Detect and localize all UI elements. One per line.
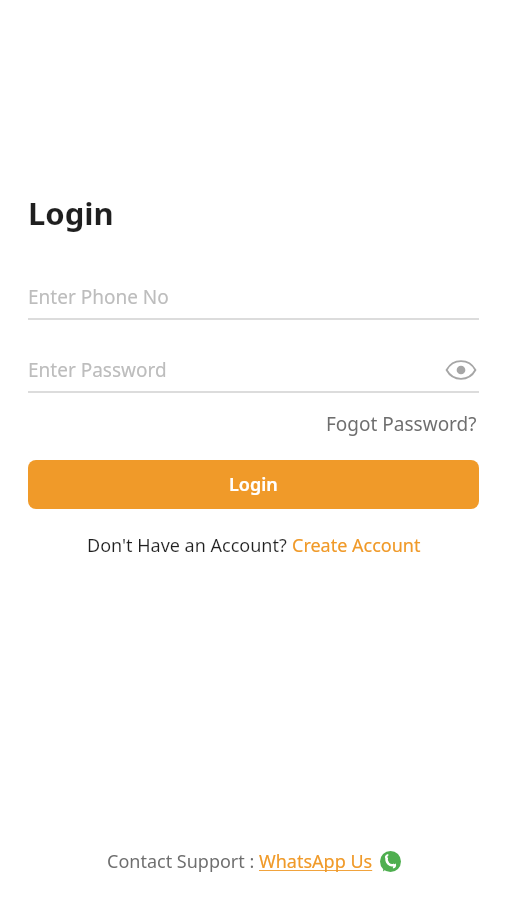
button[interactable]: Show password (443, 352, 479, 388)
staticText: Login (28, 192, 114, 234)
button[interactable]: Login (28, 460, 479, 509)
button[interactable]: Create Account (292, 533, 421, 558)
other: WhatsApp (380, 851, 401, 872)
staticText: Create Account (292, 533, 421, 558)
staticText: Login (229, 472, 278, 497)
button[interactable]: Enter Password (28, 349, 479, 391)
staticText: Don't Have an Account? (87, 533, 292, 558)
button[interactable]: WhatsApp Us (259, 849, 401, 874)
button[interactable]: Fogot Password? (324, 407, 479, 441)
staticText: WhatsApp Us (259, 849, 373, 874)
button[interactable]: Enter Phone No (28, 276, 479, 318)
staticText: Enter Password (28, 357, 167, 383)
staticText: Fogot Password? (326, 411, 477, 437)
staticText: Contact Support : (107, 849, 259, 874)
staticText: Enter Phone No (28, 284, 169, 310)
